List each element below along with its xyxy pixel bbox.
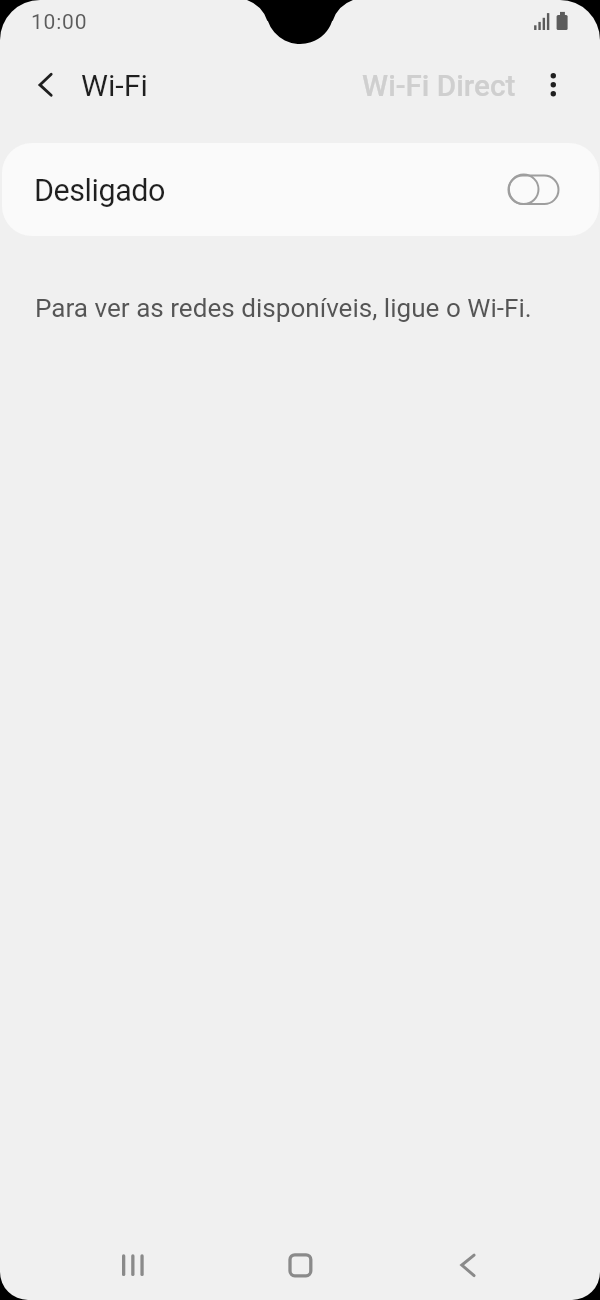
staticText: Desligado	[34, 173, 166, 209]
button[interactable]: Home	[270, 1235, 330, 1295]
staticText: Wi-Fi Direct	[362, 68, 516, 103]
button[interactable]: Navigate up	[18, 58, 73, 113]
staticText: 10:00	[31, 10, 88, 35]
button[interactable]: Desligado	[2, 143, 599, 236]
button[interactable]: Wi-Fi Direct	[350, 60, 526, 110]
button[interactable]: Back	[437, 1235, 497, 1295]
button[interactable]: Recent apps	[103, 1235, 163, 1295]
staticText: Wi-Fi	[81, 68, 148, 104]
button[interactable]: More options	[530, 60, 578, 110]
staticText: Para ver as redes disponíveis, ligue o W…	[35, 293, 532, 324]
